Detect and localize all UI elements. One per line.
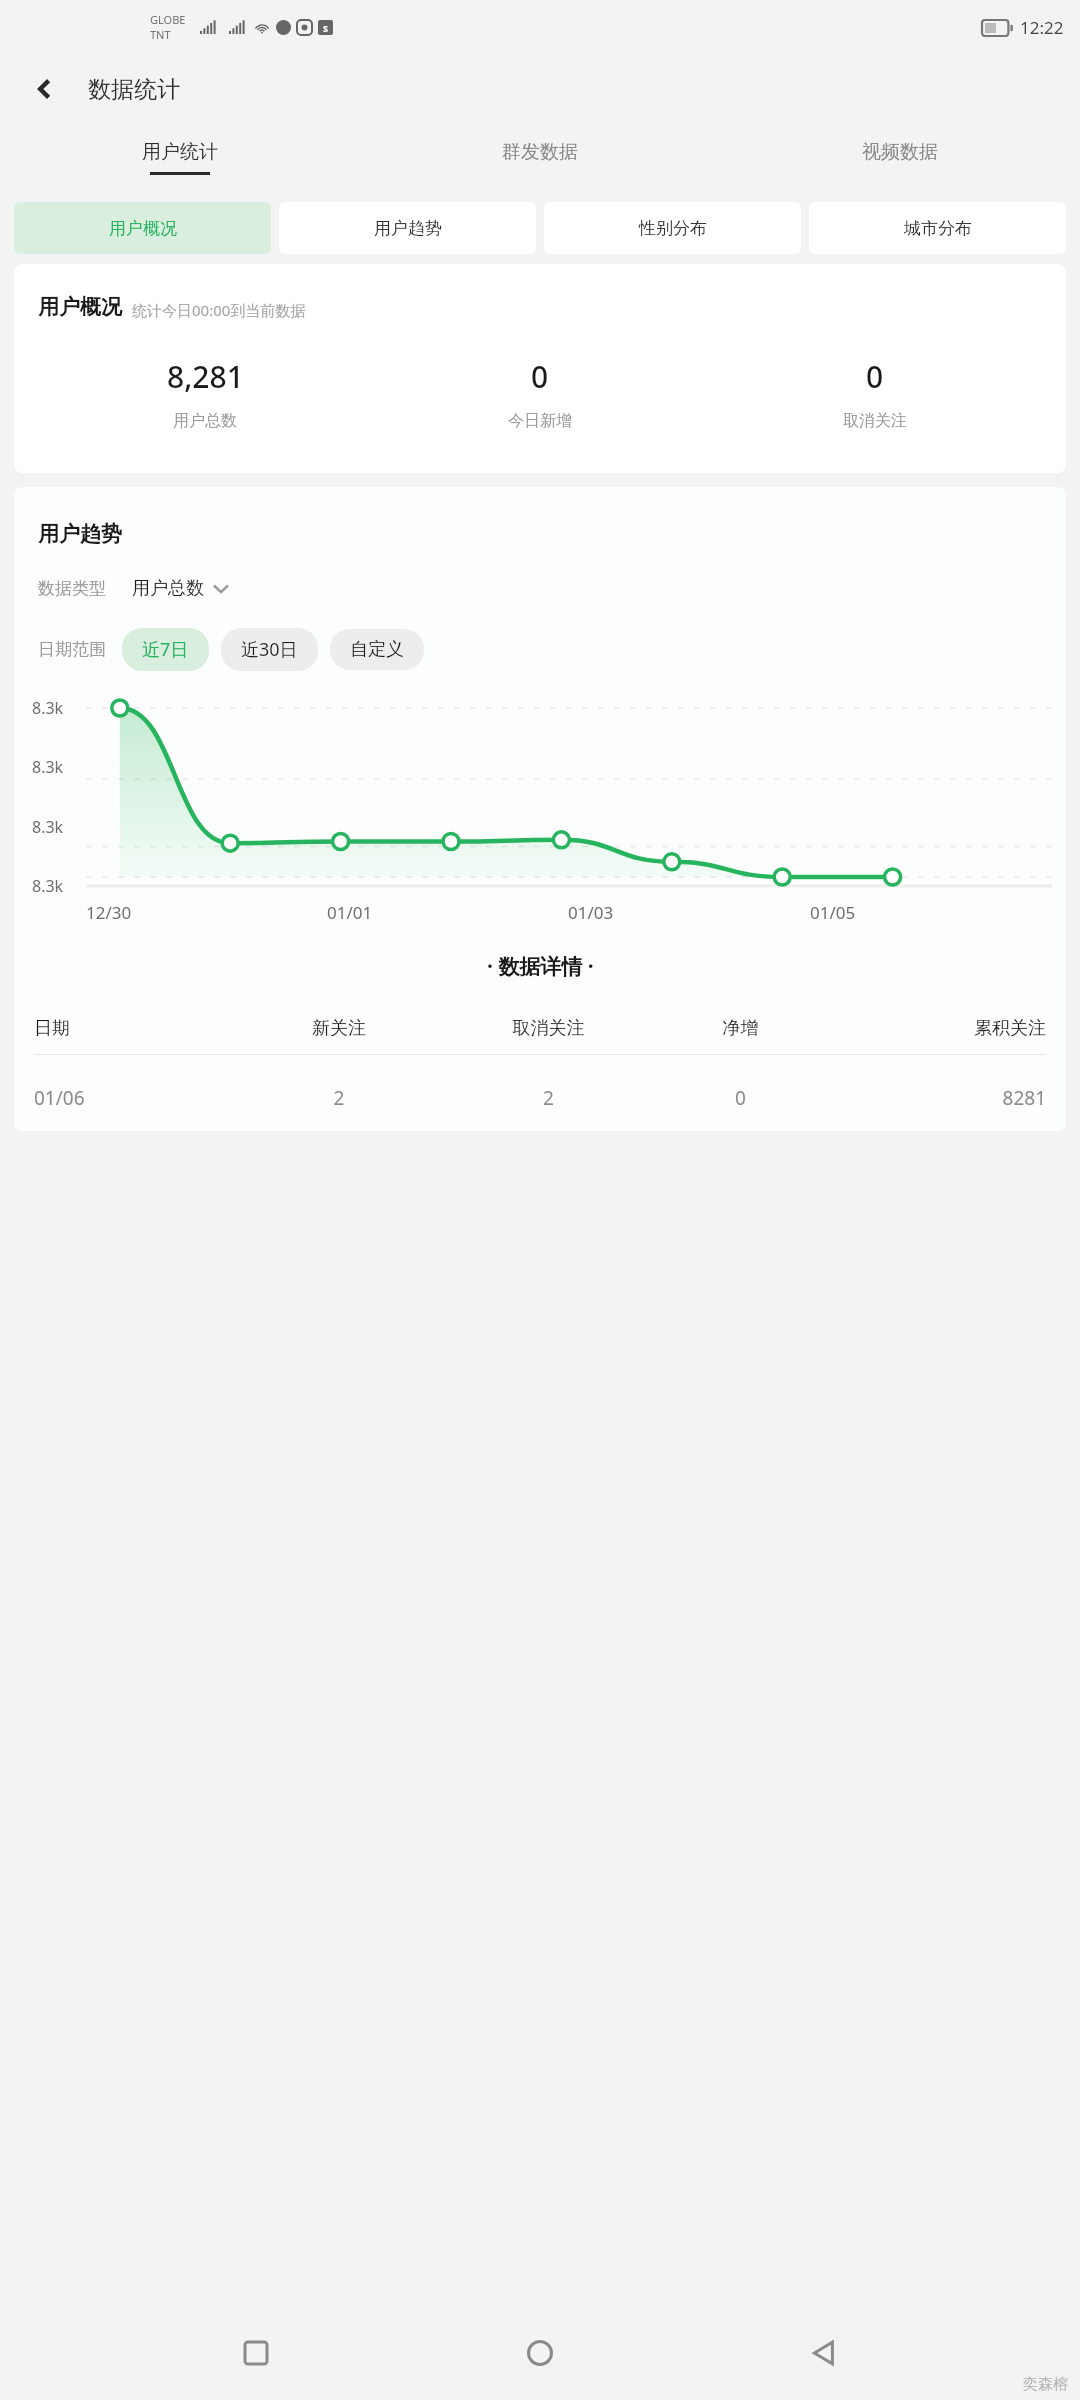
staticText: 8.3k (32, 756, 64, 778)
staticText: 8.3k (32, 697, 64, 719)
staticText: 用户统计 (142, 140, 218, 164)
staticText: 累积关注 (819, 1017, 1046, 1040)
staticText: 群发数据 (502, 140, 578, 164)
staticText: S (323, 22, 328, 34)
staticText: 12/30 (86, 901, 132, 924)
button[interactable]: Back (796, 2325, 852, 2381)
staticText: 今日新增 (508, 411, 572, 431)
button[interactable]: 01/06 (34, 1085, 1046, 1111)
staticText: 2 (435, 1085, 662, 1111)
staticText: 净增 (662, 1017, 819, 1040)
staticText: 0 (531, 356, 549, 397)
staticText: 日期 (34, 1017, 243, 1040)
staticText: 用户总数 (132, 577, 204, 600)
staticText: 用户趋势 (374, 218, 442, 239)
button[interactable]: 用户统计 (0, 124, 360, 190)
staticText: 自定义 (350, 638, 404, 661)
button[interactable]: 近30日 (221, 628, 318, 671)
staticText: TNT (150, 27, 171, 42)
button[interactable]: 视频数据 (720, 124, 1080, 190)
staticText: 城市分布 (904, 218, 972, 239)
staticText: 8,281 (167, 356, 244, 397)
staticText: 数据统计 (88, 75, 180, 104)
staticText: 8.3k (32, 816, 64, 838)
staticText: 视频数据 (862, 140, 938, 164)
button[interactable]: 用户趋势 (279, 202, 536, 254)
button[interactable]: 城市分布 (809, 202, 1066, 254)
button[interactable]: 性别分布 (544, 202, 801, 254)
staticText: 性别分布 (639, 218, 707, 239)
staticText: 01/03 (568, 901, 614, 924)
staticText: 统计今日00:00到当前数据 (132, 300, 306, 320)
staticText: 8281 (819, 1085, 1046, 1111)
button[interactable]: Recent apps (228, 2325, 284, 2381)
button[interactable]: 自定义 (330, 629, 424, 670)
staticText: · 数据详情 · (487, 952, 594, 981)
staticText: 12:22 (1020, 16, 1064, 39)
staticText: 取消关注 (435, 1017, 662, 1040)
staticText: 0 (662, 1085, 819, 1111)
staticText: 0 (866, 356, 884, 397)
button[interactable]: 群发数据 (360, 124, 720, 190)
staticText: 01/05 (810, 901, 856, 924)
button[interactable]: 近7日 (122, 628, 209, 671)
button[interactable]: 用户概况 (14, 202, 271, 254)
staticText: 近30日 (241, 637, 298, 662)
staticText: 取消关注 (843, 411, 907, 431)
staticText: 奕森榕 (1023, 2375, 1068, 2394)
staticText: 用户概况 (109, 218, 177, 239)
staticText: 用户总数 (173, 411, 237, 431)
staticText: 01/01 (327, 901, 373, 924)
button[interactable]: Back (22, 66, 68, 112)
staticText: 日期范围 (38, 639, 106, 660)
staticText: 数据类型 (38, 578, 106, 599)
staticText: 用户概况 (38, 294, 122, 320)
staticText: 新关注 (243, 1017, 435, 1040)
staticText: 用户趋势 (38, 521, 122, 547)
staticText: 01/06 (34, 1085, 243, 1111)
staticText: GLOBE (150, 12, 186, 27)
button[interactable]: Home (512, 2325, 568, 2381)
staticText: 8.3k (32, 875, 64, 897)
staticText: 2 (243, 1085, 435, 1111)
button[interactable]: 用户总数 (132, 577, 228, 600)
staticText: 近7日 (142, 637, 189, 662)
